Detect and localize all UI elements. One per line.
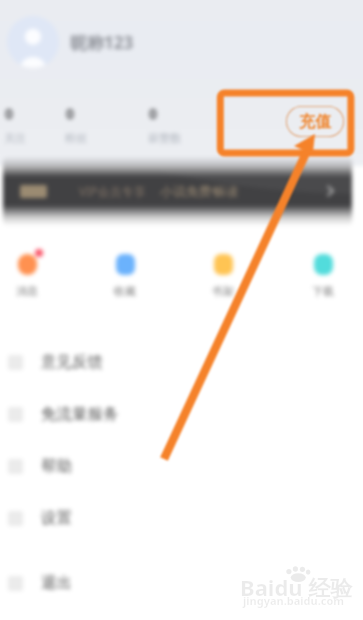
staticText: 收藏 bbox=[114, 284, 136, 298]
staticText: 免流量服务 bbox=[41, 404, 119, 424]
staticText: 关注 bbox=[4, 131, 26, 145]
button[interactable]: 0 bbox=[148, 104, 204, 145]
staticText: 0 bbox=[5, 104, 14, 123]
staticText: VIP会员专享 bbox=[79, 183, 146, 199]
staticText: 下载 bbox=[312, 284, 334, 298]
staticText: 帮助 bbox=[41, 456, 72, 476]
staticText: 书架 bbox=[212, 284, 234, 298]
staticText: 消息 bbox=[16, 284, 38, 298]
button[interactable]: 充值 bbox=[286, 106, 344, 137]
staticText: 设置 bbox=[41, 508, 72, 528]
staticText: 0 bbox=[149, 104, 158, 123]
staticText: 获赞数 bbox=[148, 131, 181, 145]
staticText: jingyan.baidu.com bbox=[243, 593, 345, 608]
other: More bbox=[322, 183, 338, 199]
staticText: 退出 bbox=[41, 573, 72, 593]
staticText: 昵称123 bbox=[70, 31, 134, 54]
button[interactable]: 退出 bbox=[0, 561, 363, 605]
staticText: 小说免费畅读 bbox=[160, 183, 238, 199]
button[interactable]: 下载 bbox=[293, 254, 353, 298]
button[interactable]: 帮助 bbox=[0, 444, 363, 488]
button[interactable]: 免流量服务 bbox=[0, 392, 363, 436]
button[interactable]: 书架 bbox=[193, 254, 253, 298]
staticText: Baidu 经验 bbox=[240, 572, 353, 602]
button[interactable]: Avatar bbox=[7, 16, 59, 68]
button[interactable]: 0 bbox=[65, 104, 121, 145]
staticText: 0 bbox=[66, 104, 75, 123]
button[interactable]: 消息 bbox=[0, 254, 57, 298]
staticText: 粉丝 bbox=[65, 131, 87, 145]
button[interactable]: 意见反馈 bbox=[0, 340, 363, 384]
staticText: 充值 bbox=[299, 112, 331, 132]
button[interactable]: 0 bbox=[4, 104, 60, 145]
staticText: 意见反馈 bbox=[41, 352, 103, 372]
button[interactable]: 设置 bbox=[0, 496, 363, 540]
button[interactable]: VIP会员专享 bbox=[3, 156, 352, 226]
button[interactable]: 收藏 bbox=[95, 254, 155, 298]
